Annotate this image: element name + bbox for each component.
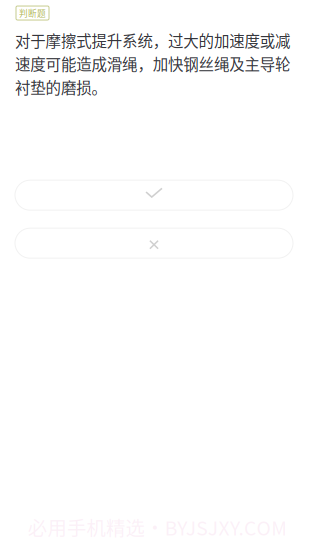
staticText: 判断题: [19, 7, 46, 19]
button[interactable]: 错误: [15, 228, 293, 258]
staticText: 对于摩擦式提升系统，过大的加速度或减速度可能造成滑绳，加快钢丝绳及主导轮衬垫的磨…: [15, 29, 290, 98]
staticText: 必用手机精选•BYJSJXY.COM: [28, 513, 287, 541]
button[interactable]: 正确: [15, 180, 293, 210]
